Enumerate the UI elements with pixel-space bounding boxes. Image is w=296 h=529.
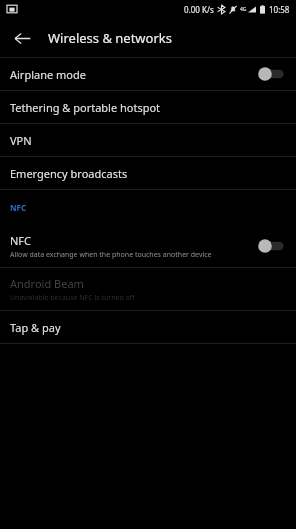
button[interactable]: Back — [4, 20, 40, 56]
staticText: Tap & pay — [10, 320, 61, 335]
staticText: Wireless & networks — [48, 29, 172, 47]
button[interactable]: Tap & pay — [0, 311, 296, 343]
button[interactable]: VPN — [0, 124, 296, 156]
staticText: VPN — [10, 133, 32, 148]
button[interactable]: Emergency broadcasts — [0, 157, 296, 189]
button[interactable]: Airplane mode toggle — [256, 64, 286, 84]
button[interactable]: NFC — [0, 225, 296, 267]
staticText: Android Beam — [10, 276, 84, 291]
staticText: Allow data exchange when the phone touch… — [10, 250, 212, 260]
staticText: NFC — [10, 233, 32, 248]
staticText: Airplane mode — [10, 67, 86, 82]
staticText: 10:58 — [269, 4, 290, 15]
staticText: 0.00 K/s — [184, 4, 214, 15]
button[interactable]: Tethering & portable hotspot — [0, 91, 296, 123]
button[interactable]: Android Beam — [0, 268, 296, 310]
staticText: Tethering & portable hotspot — [10, 100, 161, 115]
staticText: Emergency broadcasts — [10, 166, 128, 181]
staticText: 4G — [240, 6, 247, 13]
staticText: Unavailable because NFC is turned off — [10, 293, 135, 303]
button[interactable]: Airplane mode — [0, 58, 296, 90]
button[interactable]: NFC toggle — [256, 236, 286, 256]
staticText: NFC — [10, 202, 27, 213]
